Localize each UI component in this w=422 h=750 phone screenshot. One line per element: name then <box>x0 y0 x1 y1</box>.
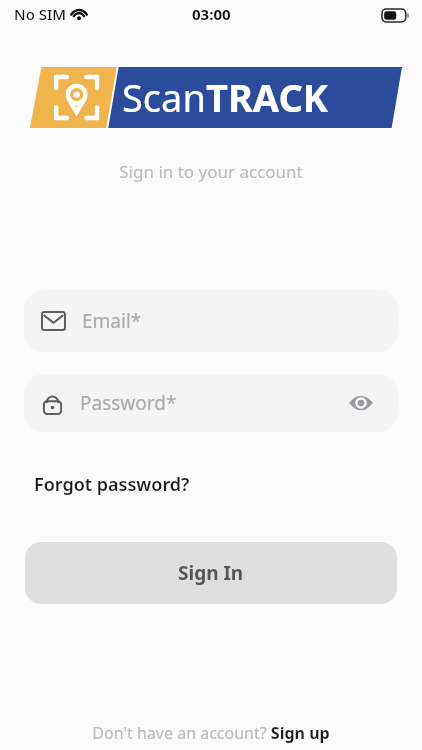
staticText: No SIM <box>14 4 67 24</box>
staticText: TRACK <box>206 71 329 123</box>
staticText: Scan <box>122 71 206 123</box>
staticText: Sign in to your account <box>0 160 422 183</box>
button[interactable]: Email* <box>24 290 398 352</box>
button[interactable]: Forgot password? <box>24 466 200 503</box>
button[interactable]: Don't have an account? Sign up <box>84 718 338 748</box>
button[interactable]: Password* <box>24 374 398 432</box>
staticText: 03:00 <box>192 4 231 24</box>
staticText: Don't have an account? Sign up <box>92 722 330 744</box>
button[interactable]: Show password <box>344 386 378 420</box>
button[interactable]: Sign In <box>25 542 397 604</box>
staticText: Sign In <box>178 560 244 586</box>
staticText: Password* <box>80 390 177 416</box>
staticText: Forgot password? <box>34 472 190 497</box>
staticText: Email* <box>82 308 142 334</box>
